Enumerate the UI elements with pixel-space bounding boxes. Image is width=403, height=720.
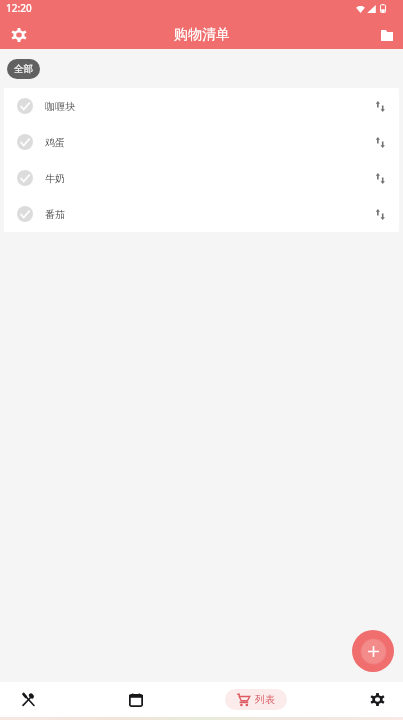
staticText: 鸡蛋	[45, 136, 65, 149]
staticText: 番茄	[45, 208, 65, 221]
button[interactable]: Calendar	[118, 682, 154, 717]
staticText: 牛奶	[45, 172, 65, 185]
button[interactable]: Reorder	[365, 163, 395, 193]
staticText: 咖喱块	[45, 100, 75, 113]
button[interactable]: Mark 番茄 bought	[13, 202, 37, 226]
button[interactable]: Add item	[352, 630, 394, 672]
button[interactable]: Folder	[371, 21, 403, 49]
button[interactable]: Mark 番茄 bought	[4, 196, 399, 232]
staticText: 购物清单	[174, 26, 230, 44]
button[interactable]: Reorder	[365, 127, 395, 157]
button[interactable]: 列表	[225, 689, 287, 710]
button[interactable]: Mark 咖喱块 bought	[4, 88, 399, 124]
button[interactable]: Mark 鸡蛋 bought	[13, 130, 37, 154]
button[interactable]: Settings	[0, 21, 38, 49]
button[interactable]: Recipes	[10, 682, 46, 717]
button[interactable]: Mark 鸡蛋 bought	[4, 124, 399, 160]
button[interactable]: Reorder	[365, 199, 395, 229]
button[interactable]: Settings	[359, 682, 395, 717]
button[interactable]: Mark 咖喱块 bought	[13, 94, 37, 118]
staticText: 12:20	[6, 1, 32, 15]
staticText: 列表	[255, 693, 275, 706]
button[interactable]: Mark 牛奶 bought	[4, 160, 399, 196]
staticText: 全部	[14, 63, 33, 75]
button[interactable]: Reorder	[365, 91, 395, 121]
button[interactable]: 全部	[7, 59, 40, 79]
button[interactable]: Mark 牛奶 bought	[13, 166, 37, 190]
